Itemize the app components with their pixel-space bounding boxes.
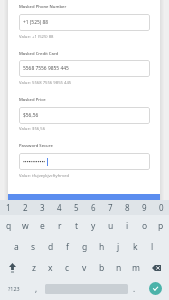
button[interactable]: n — [110, 257, 127, 278]
button[interactable]: w — [17, 215, 34, 236]
button[interactable]: f — [59, 236, 76, 257]
button[interactable]: 0 — [153, 200, 169, 215]
button[interactable]: l — [144, 236, 161, 257]
button[interactable]: Shift — [0, 257, 25, 278]
button[interactable]: z — [25, 257, 42, 278]
staticText: Masked Price — [19, 97, 46, 103]
staticText: Masked Phone Number — [19, 4, 67, 10]
staticText: . — [133, 283, 136, 294]
staticText: b — [99, 262, 105, 274]
staticText: o — [142, 220, 148, 232]
button[interactable]: 2 — [17, 200, 34, 215]
staticText: f — [66, 241, 69, 253]
button[interactable]: h — [93, 236, 110, 257]
button[interactable]: Submit — [8, 194, 160, 216]
staticText: Masked Credit Card — [19, 51, 59, 57]
staticText: 3 — [40, 202, 45, 213]
staticText: z — [32, 262, 36, 274]
staticText: x — [48, 262, 53, 274]
staticText: 5568 7556 9855 445 — [23, 65, 69, 72]
button[interactable]: p — [153, 215, 169, 236]
staticText: u — [108, 220, 114, 232]
button[interactable]: e — [34, 215, 51, 236]
button[interactable]: 6 — [85, 200, 102, 215]
button[interactable]: q — [0, 215, 17, 236]
staticText: m — [132, 262, 140, 274]
staticText: 4 — [57, 202, 62, 213]
staticText: k — [133, 241, 138, 253]
button[interactable]: u — [102, 215, 119, 236]
button[interactable]: s — [25, 236, 42, 257]
button[interactable]: Enter — [149, 282, 162, 295]
staticText: c — [65, 262, 70, 274]
staticText: 0 — [159, 202, 164, 213]
button[interactable]: a — [8, 236, 25, 257]
button[interactable]: 9 — [136, 200, 153, 215]
staticText: 9 — [142, 202, 147, 213]
staticText: d — [48, 241, 54, 253]
staticText: , — [35, 283, 38, 294]
staticText: p — [158, 220, 164, 232]
staticText: $56,56 — [23, 112, 39, 119]
button[interactable]: r — [51, 215, 68, 236]
button[interactable]: •••••••••••• — [19, 153, 150, 170]
button[interactable]: t — [68, 215, 85, 236]
button[interactable]: 7 — [102, 200, 119, 215]
staticText: r — [58, 220, 62, 232]
staticText: ?123 — [8, 285, 20, 292]
staticText: l — [151, 241, 154, 253]
staticText: v — [82, 262, 87, 274]
staticText: 6 — [91, 202, 96, 213]
staticText: +1 (525) 88 — [23, 19, 49, 26]
button[interactable]: ?123 — [0, 278, 27, 299]
staticText: q — [6, 220, 12, 232]
button[interactable]: i — [119, 215, 136, 236]
button[interactable]: 1 — [0, 200, 17, 215]
staticText: Value: tfujveykjvcftyhrved — [19, 173, 70, 179]
button[interactable]: x — [42, 257, 59, 278]
staticText: y — [91, 220, 96, 232]
button[interactable]: 5 — [68, 200, 85, 215]
staticText: a — [14, 241, 19, 253]
staticText: h — [99, 241, 105, 253]
staticText: i — [126, 220, 129, 232]
staticText: 1 — [6, 202, 11, 213]
button[interactable]: 5568 7556 9855 445 — [19, 60, 150, 77]
staticText: Value: 5568 7556 9855 445 — [19, 80, 72, 86]
button[interactable]: v — [76, 257, 93, 278]
staticText: t — [75, 220, 79, 232]
staticText: 7 — [108, 202, 113, 213]
staticText: Value: $56,56 — [19, 126, 46, 132]
button[interactable]: . — [128, 278, 141, 299]
staticText: 2 — [23, 202, 28, 213]
staticText: 5 — [74, 202, 79, 213]
button[interactable]: o — [136, 215, 153, 236]
staticText: 8 — [125, 202, 130, 213]
staticText: w — [22, 220, 29, 232]
staticText: e — [40, 220, 45, 232]
staticText: •••••••••••• — [23, 159, 46, 166]
button[interactable]: +1 (525) 88 — [19, 14, 150, 31]
staticText: Value: +1 (525) 88 — [19, 34, 54, 40]
button[interactable]: 3 — [34, 200, 51, 215]
button[interactable]: g — [76, 236, 93, 257]
staticText: Submit — [76, 201, 93, 208]
staticText: s — [31, 241, 36, 253]
button[interactable]: y — [85, 215, 102, 236]
button[interactable]: b — [93, 257, 110, 278]
button[interactable]: j — [110, 236, 127, 257]
button[interactable]: 4 — [51, 200, 68, 215]
button[interactable]: k — [127, 236, 144, 257]
button[interactable]: d — [42, 236, 59, 257]
button[interactable]: c — [59, 257, 76, 278]
staticText: n — [116, 262, 122, 274]
staticText: Password Secure — [19, 143, 53, 149]
button[interactable]: , — [27, 278, 45, 299]
button[interactable]: 8 — [119, 200, 136, 215]
button[interactable]: m — [127, 257, 144, 278]
staticText: j — [117, 241, 120, 253]
staticText: g — [82, 241, 88, 253]
button[interactable]: Backspace — [144, 257, 169, 278]
button[interactable]: $56,56 — [19, 107, 150, 124]
